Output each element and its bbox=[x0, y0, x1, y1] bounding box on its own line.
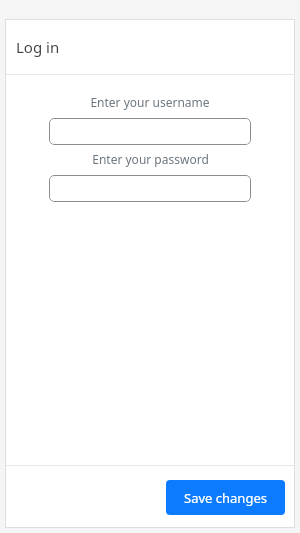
staticText: Enter your username bbox=[90, 94, 210, 110]
staticText: Enter your password bbox=[92, 151, 209, 167]
button[interactable] bbox=[49, 118, 251, 145]
button[interactable]: Save changes bbox=[166, 480, 285, 515]
staticText: Save changes bbox=[184, 489, 267, 507]
staticText: Log in bbox=[16, 37, 60, 57]
button[interactable] bbox=[49, 175, 251, 202]
